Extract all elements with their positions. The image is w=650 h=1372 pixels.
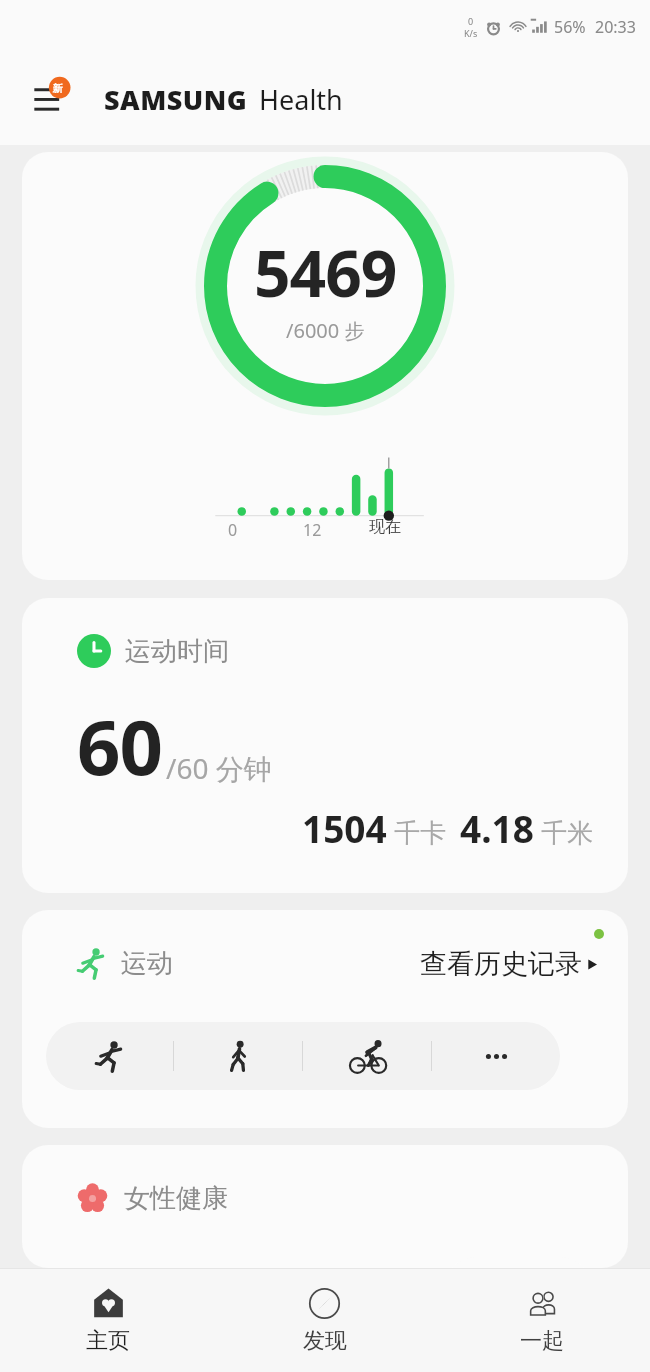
staticText: 发现	[303, 1327, 347, 1355]
button[interactable]: Cycling	[303, 1022, 431, 1090]
button[interactable]: 主页	[0, 1269, 216, 1372]
staticText: 12	[303, 519, 322, 541]
button[interactable]: 运动时间	[22, 598, 628, 893]
staticText: 0	[228, 519, 238, 541]
staticText: 现在	[369, 517, 401, 537]
staticText: 查看历史记录	[420, 947, 582, 981]
staticText: 女性健康	[124, 1182, 228, 1215]
button[interactable]: 女性健康	[22, 1145, 628, 1268]
staticText: 56%	[554, 16, 586, 38]
staticText: 主页	[86, 1327, 130, 1355]
staticText: /60 分钟	[166, 749, 272, 787]
staticText: 千卡	[394, 817, 446, 850]
button[interactable]: More workouts	[432, 1022, 560, 1090]
staticText: 4.18	[460, 803, 534, 853]
staticText: 20:33	[595, 16, 636, 38]
staticText: 运动时间	[125, 635, 229, 668]
button[interactable]: 查看历史记录	[420, 947, 600, 981]
staticText: 5469	[254, 229, 397, 316]
button[interactable]: 5469	[22, 152, 628, 580]
staticText: /6000 步	[286, 317, 365, 344]
button[interactable]: 一起	[433, 1269, 650, 1372]
staticText: 一起	[520, 1327, 564, 1355]
staticText: Health	[259, 81, 343, 118]
button[interactable]: Walking	[174, 1022, 302, 1090]
staticText: 新	[50, 82, 65, 95]
staticText: 运动	[121, 947, 173, 980]
staticText: 1504	[302, 803, 387, 853]
staticText: 千米	[541, 817, 593, 850]
button[interactable]: 发现	[216, 1269, 433, 1372]
button[interactable]: Running	[46, 1022, 173, 1090]
button[interactable]: Menu	[30, 73, 84, 127]
staticText: SAMSUNG	[104, 81, 248, 118]
staticText: 0	[468, 15, 474, 27]
staticText: 60	[77, 694, 162, 798]
staticText: K/s	[464, 27, 478, 39]
